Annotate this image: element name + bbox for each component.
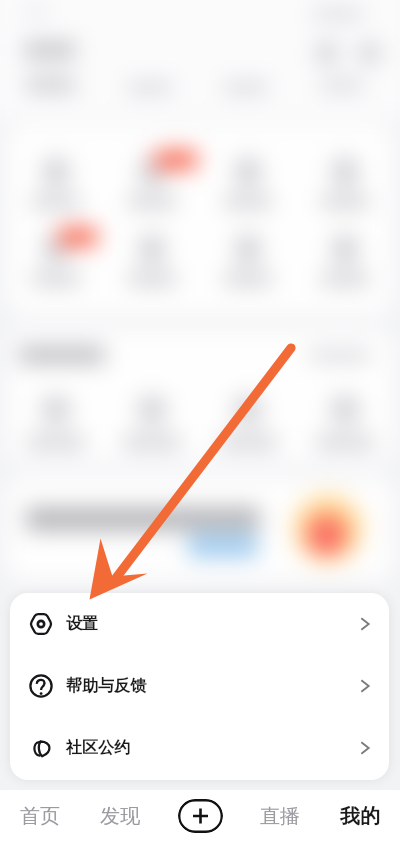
button[interactable]: 直播 <box>240 790 320 842</box>
button[interactable]: 帮助与反馈 <box>10 655 389 717</box>
button[interactable]: 首页 <box>0 790 80 842</box>
staticText: 我的 <box>340 804 380 829</box>
staticText: 帮助与反馈 <box>66 676 146 696</box>
staticText: 设置 <box>66 614 98 634</box>
button[interactable]: 社区公约 <box>10 717 389 779</box>
staticText: 社区公约 <box>66 738 130 758</box>
staticText: 发现 <box>100 804 140 829</box>
button[interactable]: 发现 <box>80 790 160 842</box>
staticText: 直播 <box>260 804 300 829</box>
button[interactable]: 设置 <box>10 593 389 655</box>
button[interactable]: 我的 <box>320 790 400 842</box>
staticText: 首页 <box>20 804 60 829</box>
button[interactable]: Create post <box>178 799 223 833</box>
